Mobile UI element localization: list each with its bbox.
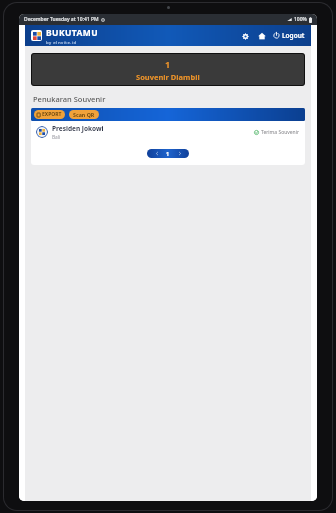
- staticText: Bali: [52, 134, 61, 141]
- staticText: 1: [165, 58, 171, 70]
- staticText: 1: [166, 150, 170, 157]
- button[interactable]: Terima Souvenir: [254, 129, 300, 136]
- staticText: Logout: [282, 31, 305, 40]
- staticText: BUKUTAMU: [46, 27, 98, 39]
- staticText: Penukaran Souvenir: [33, 94, 106, 104]
- button[interactable]: Logout: [273, 31, 305, 40]
- staticText: Souvenir Diambil: [136, 72, 200, 82]
- staticText: December Tuesday at 10:41 PM: [24, 16, 99, 23]
- button[interactable]: 1: [31, 53, 305, 86]
- button[interactable]: Presiden Jokowi: [31, 121, 305, 143]
- button[interactable]: Next page: [178, 151, 182, 156]
- button[interactable]: 1: [166, 150, 170, 157]
- button[interactable]: Previous page: [155, 151, 159, 156]
- staticText: 100%: [294, 16, 307, 23]
- staticText: Scan QR: [73, 111, 95, 118]
- button[interactable]: Scan QR: [69, 110, 99, 119]
- staticText: by elnvite.id: [46, 39, 77, 45]
- button[interactable]: Settings: [239, 30, 251, 42]
- staticText: Terima Souvenir: [261, 129, 300, 136]
- staticText: Presiden Jokowi: [52, 124, 104, 133]
- button[interactable]: Home: [256, 30, 268, 42]
- button[interactable]: EXPORT: [34, 110, 65, 119]
- staticText: EXPORT: [42, 111, 62, 118]
